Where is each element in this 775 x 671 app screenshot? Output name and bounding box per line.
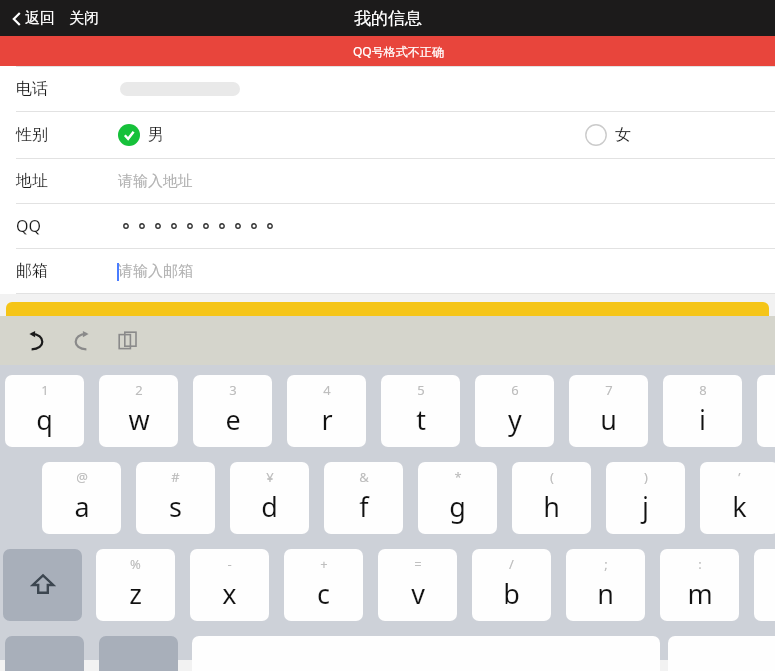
button[interactable] (6, 302, 769, 316)
staticText: 4 (323, 381, 331, 399)
button[interactable]: ) (606, 462, 685, 534)
staticText: 关闭 (69, 9, 99, 28)
staticText: 7 (605, 381, 613, 399)
staticText: 我的信息 (354, 8, 422, 29)
staticText: 女 (615, 125, 631, 145)
button[interactable]: 男 (118, 124, 172, 146)
staticText: q (36, 401, 53, 438)
button[interactable]: 5 (381, 375, 460, 447)
button[interactable]: ’ (700, 462, 775, 534)
button[interactable]: 电话 (0, 67, 775, 111)
button[interactable]: 2 (99, 375, 178, 447)
staticText: ; (604, 555, 608, 573)
button[interactable]: Symbols (5, 636, 84, 671)
button[interactable]: @ (42, 462, 121, 534)
button[interactable]: 邮箱 (0, 249, 775, 293)
staticText: = (414, 555, 422, 573)
button[interactable]: Shift (3, 549, 82, 621)
staticText: @ (76, 468, 88, 486)
staticText: j (642, 488, 649, 525)
staticText: 5 (417, 381, 425, 399)
staticText: 2 (135, 381, 143, 399)
button[interactable]: ( (512, 462, 591, 534)
staticText: z (129, 575, 142, 612)
staticText: 邮箱 (16, 261, 48, 281)
button[interactable]: 3 (193, 375, 272, 447)
staticText: b (503, 575, 520, 612)
staticText: 地址 (16, 171, 48, 191)
staticText: & (359, 468, 369, 486)
staticText: r (321, 401, 333, 438)
staticText: ( (550, 468, 554, 486)
staticText: * (454, 468, 462, 486)
button[interactable]: 7 (569, 375, 648, 447)
staticText: % (130, 555, 141, 573)
staticText: n (597, 575, 614, 612)
staticText: / (509, 555, 514, 573)
button[interactable]: QQ (0, 204, 775, 248)
staticText: u (600, 401, 617, 438)
staticText: ¥ (266, 468, 274, 486)
button[interactable]: % (96, 549, 175, 621)
button[interactable]: : (660, 549, 739, 621)
staticText: - (227, 555, 232, 573)
button[interactable]: 地址 (0, 159, 775, 203)
button[interactable]: # (136, 462, 215, 534)
button[interactable]: = (378, 549, 457, 621)
staticText: t (416, 401, 426, 438)
button[interactable]: * (418, 462, 497, 534)
staticText: w (128, 401, 150, 438)
button[interactable]: 4 (287, 375, 366, 447)
staticText: QQ (16, 215, 41, 237)
button[interactable]: 6 (475, 375, 554, 447)
button[interactable]: 女 (585, 124, 639, 146)
button[interactable]: 关闭 (65, 6, 103, 31)
staticText: e (225, 401, 241, 438)
staticText: d (261, 488, 278, 525)
button[interactable]: 1 (5, 375, 84, 447)
staticText: ) (644, 468, 648, 486)
staticText: : (698, 555, 702, 573)
staticText: c (317, 575, 330, 612)
staticText: 请输入邮箱 (118, 262, 193, 281)
staticText: 请输入地址 (118, 172, 193, 191)
staticText: y (508, 401, 522, 438)
staticText: v (411, 575, 425, 612)
button[interactable]: 返回 (8, 6, 59, 31)
staticText: # (171, 468, 180, 486)
staticText: ’ (738, 468, 741, 486)
staticText: s (169, 488, 182, 525)
staticText: i (699, 401, 706, 438)
button[interactable]: Language (99, 636, 178, 671)
staticText: 性别 (16, 125, 48, 145)
staticText: k (732, 488, 747, 525)
staticText: f (359, 488, 369, 525)
staticText: 电话 (16, 79, 48, 99)
staticText: 8 (699, 381, 707, 399)
button[interactable]: 9 (757, 375, 775, 447)
staticText: 6 (511, 381, 519, 399)
staticText: a (74, 488, 90, 525)
button[interactable]: - (190, 549, 269, 621)
staticText: 1 (41, 381, 49, 399)
staticText: x (222, 575, 237, 612)
staticText: 返回 (25, 9, 55, 28)
button[interactable]: ¥ (230, 462, 309, 534)
button[interactable]: & (324, 462, 403, 534)
button[interactable]: Undo (16, 321, 56, 361)
staticText: h (543, 488, 560, 525)
staticText: m (687, 575, 713, 612)
button[interactable]: Paste (108, 321, 148, 361)
button[interactable]: Redo (62, 321, 102, 361)
staticText: QQ号格式不正确 (353, 43, 444, 59)
staticText: g (449, 488, 466, 525)
button[interactable]: / (472, 549, 551, 621)
button[interactable]: 8 (663, 375, 742, 447)
staticText: 3 (229, 381, 237, 399)
button[interactable]: + (284, 549, 363, 621)
button[interactable]: Backspace (754, 549, 775, 621)
button[interactable]: ; (566, 549, 645, 621)
staticText: + (320, 555, 328, 573)
